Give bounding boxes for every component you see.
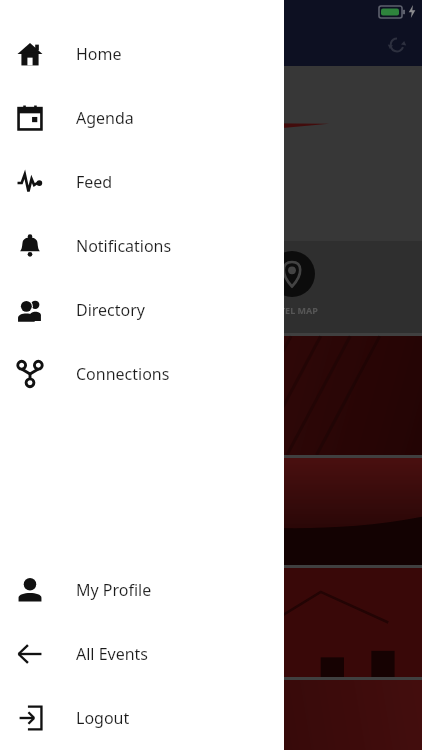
button[interactable]: Home [0,22,284,86]
button[interactable]: Connections [0,342,284,406]
staticText: Connections [76,363,170,385]
button[interactable]: My Profile [0,558,284,622]
button[interactable] [110,251,156,297]
staticText: All Events [76,643,149,665]
button[interactable]: BED AND BREAKFAST [0,336,422,455]
staticText: Home [76,43,122,65]
button[interactable] [0,680,422,750]
staticText: Notifications [76,235,172,257]
button[interactable]: All Events [0,622,284,686]
staticText: Logout [76,707,130,729]
button[interactable] [0,458,422,565]
staticText: Feed [76,171,113,193]
button[interactable] [269,251,315,297]
button[interactable]: Logout [0,686,284,750]
staticText: BED AND BREAKFAST [14,367,132,425]
button[interactable]: Directory [0,278,284,342]
staticText: HOTEL MAP [266,304,318,316]
staticText: SOCIAL FEED [104,304,161,316]
button[interactable]: EARNINGS [0,568,422,677]
staticText: Directory [76,299,146,321]
button[interactable]: Agenda [0,86,284,150]
staticText: Agenda [76,107,134,129]
button[interactable]: Feed [0,150,284,214]
staticText: My Profile [76,579,152,601]
button[interactable]: Notifications [0,214,284,278]
button[interactable]: Refresh [382,30,412,60]
